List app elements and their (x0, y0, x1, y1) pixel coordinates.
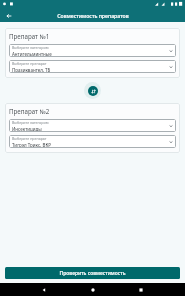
staticText: Антигельминтные (12, 51, 52, 57)
staticText: Препарат №2 (9, 107, 50, 115)
button[interactable]: Выберите категорию (9, 119, 176, 132)
staticText: Инсектициды (12, 126, 42, 132)
button[interactable]: Главный экран (88, 285, 98, 295)
button[interactable]: Назад (3, 10, 14, 21)
button[interactable]: Поменять препараты местами (84, 82, 101, 99)
button[interactable]: Выберите категорию (9, 44, 176, 57)
button[interactable]: Последние приложения (136, 285, 146, 295)
staticText: Тигрэл Трикс, ВКР (12, 142, 51, 148)
button[interactable]: Назад (39, 285, 49, 295)
button[interactable]: Выберите препарат (9, 60, 176, 73)
staticText: Выберите категорию (12, 120, 49, 125)
button[interactable]: Выберите препарат (9, 135, 176, 148)
staticText: Совместимость препаратов (57, 12, 129, 19)
staticText: Проверить совместимость (59, 270, 126, 277)
staticText: Выберите препарат (12, 136, 47, 141)
staticText: Препарат №1 (9, 32, 50, 40)
staticText: Выберите категорию (12, 45, 49, 50)
button[interactable]: Проверить совместимость (5, 267, 180, 279)
staticText: Празиквантел, ТБ (12, 67, 51, 73)
staticText: Выберите препарат (12, 61, 47, 66)
